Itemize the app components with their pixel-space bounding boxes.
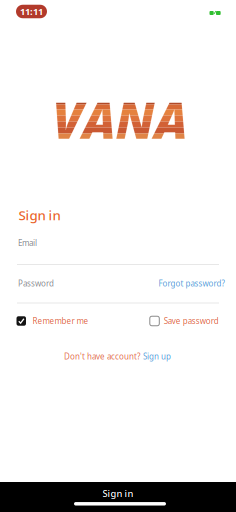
staticText: Email bbox=[18, 238, 37, 248]
button[interactable]: Sign in bbox=[0, 482, 236, 512]
staticText: Sign in bbox=[102, 487, 133, 500]
button[interactable]: Password bbox=[17, 274, 219, 304]
staticText: Sign in bbox=[18, 206, 60, 224]
staticText: Save password bbox=[164, 316, 219, 326]
button[interactable]: Forgot password? bbox=[158, 278, 224, 289]
button[interactable]: Remember me bbox=[16, 316, 88, 326]
staticText: 11:11 bbox=[20, 5, 43, 18]
button[interactable]: Save password bbox=[150, 316, 219, 326]
staticText: Remember me bbox=[32, 316, 88, 326]
button[interactable]: Sign up bbox=[143, 351, 171, 362]
staticText: Forgot password? bbox=[158, 278, 224, 289]
staticText: Password bbox=[18, 278, 54, 289]
button[interactable]: Email bbox=[17, 235, 219, 265]
staticText: Don't have account? bbox=[64, 351, 140, 362]
staticText: Sign up bbox=[143, 351, 171, 362]
